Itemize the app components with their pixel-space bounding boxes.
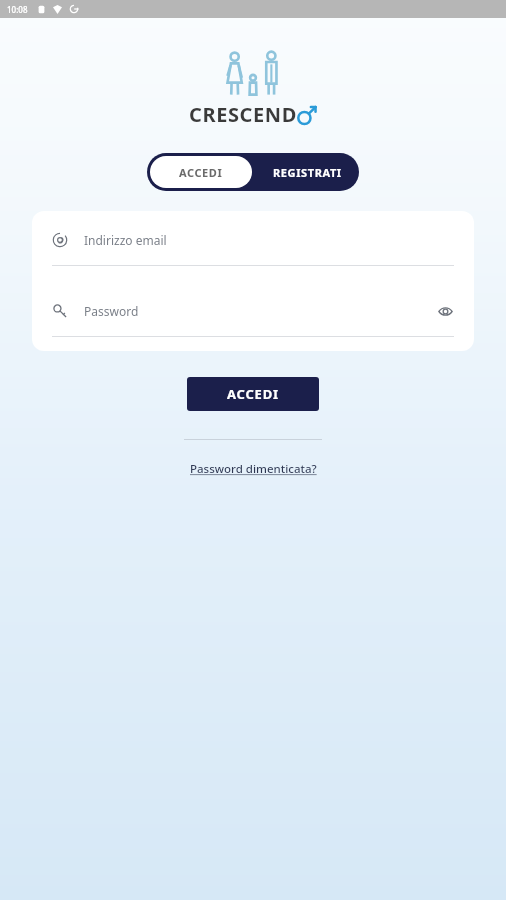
- button[interactable]: ACCEDI: [187, 377, 319, 411]
- button[interactable]: Indirizzo email: [52, 229, 454, 266]
- staticText: ACCEDI: [179, 165, 223, 180]
- staticText: REGISTRATI: [273, 165, 342, 180]
- button[interactable]: Show password: [436, 302, 454, 320]
- staticText: CRESCEND: [189, 101, 297, 128]
- staticText: Password: [84, 303, 139, 319]
- staticText: Password dimenticata?: [190, 461, 317, 477]
- staticText: ACCEDI: [227, 385, 279, 403]
- button[interactable]: Password dimenticata?: [184, 455, 323, 483]
- button[interactable]: REGISTRATI: [255, 153, 359, 191]
- button[interactable]: ACCEDI: [150, 156, 252, 188]
- staticText: Indirizzo email: [84, 232, 167, 248]
- staticText: 10:08: [7, 4, 28, 15]
- button[interactable]: Password: [52, 300, 454, 337]
